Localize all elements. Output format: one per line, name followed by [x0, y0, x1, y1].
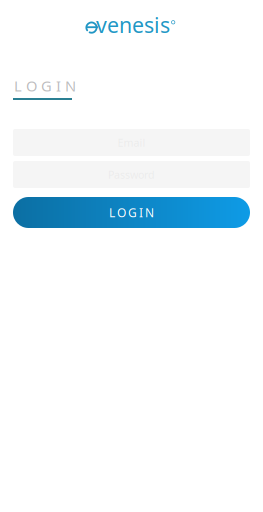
button[interactable]: L O G I N [13, 197, 250, 228]
staticText: L O G I N [14, 76, 76, 95]
staticText: venesis [96, 10, 170, 39]
staticText: L O G I N [109, 204, 154, 220]
